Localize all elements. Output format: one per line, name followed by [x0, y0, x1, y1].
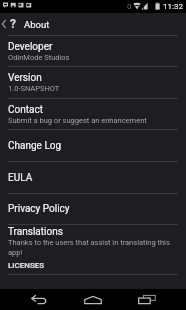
staticText: Change Log	[8, 140, 62, 152]
button[interactable]: Contact	[0, 99, 186, 129]
staticText: Translations	[8, 226, 63, 238]
button[interactable]: Navigate up	[0, 13, 186, 35]
staticText: 1.0-SNAPSHOT	[8, 84, 60, 93]
staticText: Privacy Policy	[8, 203, 70, 215]
staticText: Contact	[8, 104, 43, 116]
button[interactable]: Change Log	[0, 130, 186, 161]
staticText: ?	[10, 17, 16, 31]
button[interactable]: Back	[12, 289, 66, 310]
staticText: Version	[8, 72, 42, 84]
button[interactable]: Translations	[0, 225, 186, 257]
staticText: 0	[127, 2, 132, 11]
button[interactable]: Recent apps	[120, 289, 174, 310]
button[interactable]: Privacy Policy	[0, 194, 186, 224]
staticText: OdinMode Studios	[8, 53, 70, 62]
button[interactable]: Version	[0, 67, 186, 98]
staticText: LICENSES	[8, 261, 45, 270]
other: Navigate up	[0, 13, 8, 35]
staticText: EULA	[8, 172, 33, 184]
button[interactable]: Developer	[0, 36, 186, 66]
button[interactable]: Home	[66, 289, 120, 310]
staticText: Developer	[8, 41, 53, 53]
button[interactable]: EULA	[0, 162, 186, 193]
staticText: Submit a bug or suggest an enhancement	[8, 116, 147, 125]
staticText: Thanks to the users that assist in trans…	[8, 238, 177, 256]
staticText: About	[24, 19, 50, 30]
staticText: 11:32	[163, 2, 183, 11]
